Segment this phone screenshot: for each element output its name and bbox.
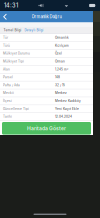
staticText: İlçesi bbox=[3, 99, 12, 103]
staticText: Mülkiyet Durumu bbox=[3, 52, 30, 55]
staticText: Mülkiyet Tipi bbox=[3, 59, 24, 63]
staticText: Tarihi bbox=[3, 115, 12, 118]
staticText: 14:31 bbox=[4, 2, 18, 9]
staticText: Merkez Kadıköy bbox=[55, 99, 81, 103]
staticText: Türü bbox=[3, 44, 10, 47]
staticText: 148 bbox=[55, 75, 60, 79]
staticText: Temel Bilgi bbox=[3, 28, 21, 32]
staticText: Orman bbox=[55, 59, 65, 63]
staticText: Kızılçam bbox=[55, 44, 69, 47]
staticText: 1.245 m² bbox=[55, 67, 68, 71]
staticText: Pafta / Ada bbox=[3, 83, 20, 87]
button[interactable]: Back bbox=[0, 11, 10, 22]
staticText: Detaylı Bilgi bbox=[25, 28, 44, 32]
staticText: Güncelleme Tipi bbox=[3, 107, 29, 111]
staticText: Tür bbox=[3, 36, 8, 39]
button[interactable]: Haritada Göster bbox=[2, 122, 91, 135]
staticText: Alan bbox=[3, 67, 10, 71]
staticText: Yeni Kayıt Ekle bbox=[55, 107, 79, 111]
staticText: Parsel bbox=[3, 75, 13, 79]
staticText: Ormanlık Doğru bbox=[31, 14, 61, 19]
staticText: Özel bbox=[55, 52, 62, 55]
button[interactable]: Detaylı Bilgi bbox=[23, 27, 45, 33]
staticText: Haritada Göster bbox=[27, 125, 66, 131]
staticText: Mevkii bbox=[3, 91, 14, 95]
staticText: Merkez bbox=[55, 91, 67, 95]
staticText: 12.04.2024 bbox=[55, 115, 72, 118]
staticText: Ormanlık bbox=[55, 36, 69, 39]
button[interactable]: Temel Bilgi bbox=[2, 27, 23, 33]
staticText: 32 / 15 bbox=[55, 83, 65, 87]
